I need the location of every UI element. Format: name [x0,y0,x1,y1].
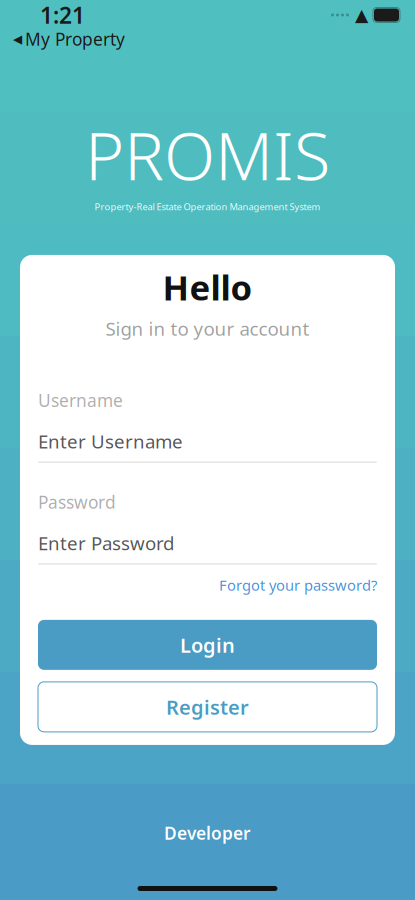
staticText: PROMIS [85,110,330,198]
button[interactable]: Enter Password [38,531,377,564]
staticText: Password [38,491,116,514]
staticText: Login [180,632,235,658]
staticText: Forgot your password? [219,575,377,595]
staticText: ◀ [13,32,22,46]
staticText: Property-Real Estate Operation Managemen… [94,200,320,213]
staticText: My Property [25,27,125,50]
button[interactable]: Developer [107,818,307,848]
staticText: Sign in to your account [105,316,309,341]
staticText: ▲ [355,5,368,25]
button[interactable]: Enter Username [38,429,377,463]
staticText: Developer [164,821,251,844]
staticText: 1:21 [40,0,85,30]
staticText: Register [166,694,249,720]
button[interactable]: Register [38,682,377,732]
staticText: Enter Password [38,531,174,555]
staticText: Enter Username [38,429,183,454]
staticText: Hello [162,264,252,310]
button[interactable]: Login [38,620,377,670]
button[interactable]: Forgot your password? [219,572,377,598]
staticText: Username [38,389,123,412]
